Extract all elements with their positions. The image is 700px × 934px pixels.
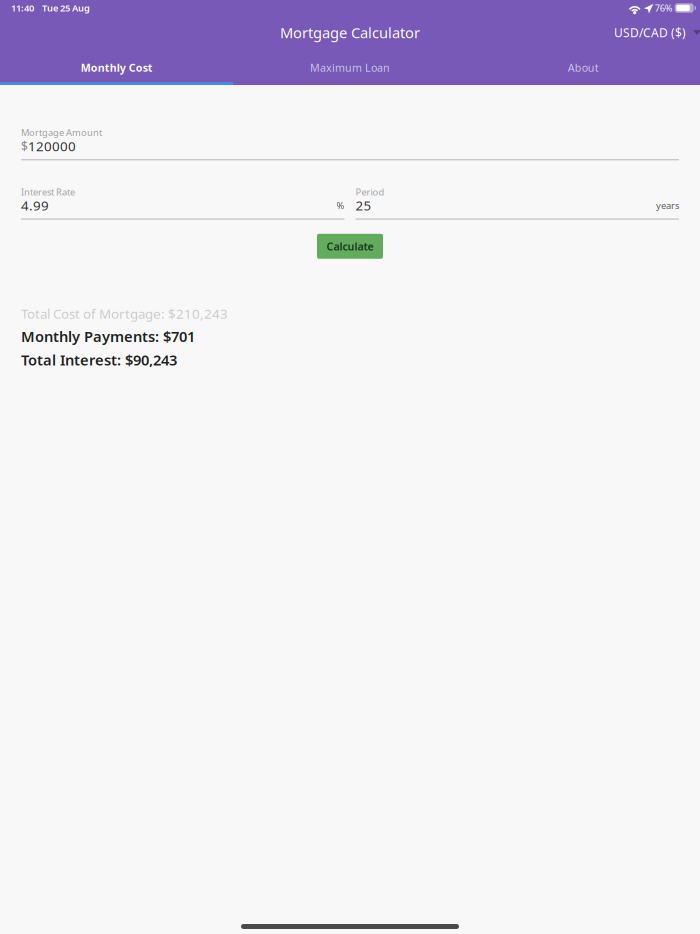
button[interactable]: Maximum Loan bbox=[233, 49, 467, 82]
staticText: 120000 bbox=[28, 137, 76, 155]
staticText: About bbox=[568, 60, 599, 75]
staticText: 11:40 bbox=[11, 2, 34, 14]
staticText: $ bbox=[21, 138, 28, 154]
staticText: Total Interest: $90,243 bbox=[21, 350, 177, 369]
staticText: Interest Rate bbox=[21, 186, 75, 198]
staticText: Monthly Payments: $701 bbox=[21, 326, 195, 346]
staticText: Total Cost of Mortgage: $210,243 bbox=[21, 305, 228, 322]
staticText: Mortgage Calculator bbox=[280, 23, 420, 42]
staticText: USD/CAD ($) bbox=[614, 24, 686, 40]
staticText: Monthly Cost bbox=[81, 60, 153, 75]
staticText: 4.99 bbox=[21, 196, 49, 214]
staticText: Period bbox=[355, 186, 384, 198]
button[interactable]: Monthly Cost bbox=[0, 49, 233, 82]
staticText: Tue 25 Aug bbox=[42, 2, 90, 14]
staticText: 76% bbox=[655, 2, 673, 14]
staticText: % bbox=[336, 199, 344, 212]
button[interactable]: Calculate bbox=[317, 234, 383, 259]
staticText: years bbox=[656, 199, 679, 212]
button[interactable]: USD/CAD ($) bbox=[612, 18, 700, 46]
staticText: Calculate bbox=[326, 239, 373, 253]
button[interactable]: About bbox=[467, 49, 700, 82]
staticText: Maximum Loan bbox=[310, 60, 390, 75]
staticText: Mortgage Amount bbox=[21, 126, 102, 139]
staticText: 25 bbox=[355, 196, 371, 214]
